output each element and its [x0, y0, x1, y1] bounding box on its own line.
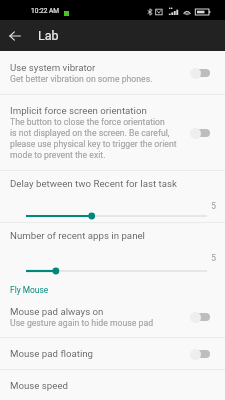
button[interactable]: Number of recent apps in panel — [0, 223, 225, 277]
button[interactable]: Implicit force screen orientation — [0, 95, 225, 170]
button[interactable]: Mouse pad always on — [0, 296, 225, 337]
staticText: Number of recent apps in panel — [10, 230, 145, 241]
staticText: Mouse pad always on — [10, 306, 104, 317]
button[interactable]: Fly Mouse — [0, 277, 225, 296]
staticText: 5 — [0, 253, 216, 263]
button[interactable]: Mouse speed — [0, 370, 225, 400]
staticText: Use gesture again to hide mouse pad — [10, 318, 154, 328]
staticText: Implicit force screen orientation — [10, 105, 147, 116]
staticText: Fly Mouse — [10, 285, 49, 295]
staticText: 5 — [0, 201, 216, 211]
staticText: Mouse pad floating — [10, 348, 94, 359]
button[interactable]: Delay between two Recent for last task — [0, 171, 225, 222]
staticText: Delay between two Recent for last task — [10, 178, 177, 189]
button[interactable]: Use system vibrator — [0, 51, 225, 94]
staticText: Use system vibrator — [10, 62, 96, 73]
staticText: The button to close the force orientatio… — [10, 117, 177, 160]
staticText: Mouse speed — [10, 380, 69, 391]
staticText: Lab — [38, 28, 59, 43]
staticText: 10:22 AM — [31, 7, 60, 15]
staticText: Get better vibration on some phones. — [10, 74, 153, 84]
button[interactable]: Mouse pad floating — [0, 338, 225, 369]
button[interactable]: Back — [0, 21, 30, 51]
